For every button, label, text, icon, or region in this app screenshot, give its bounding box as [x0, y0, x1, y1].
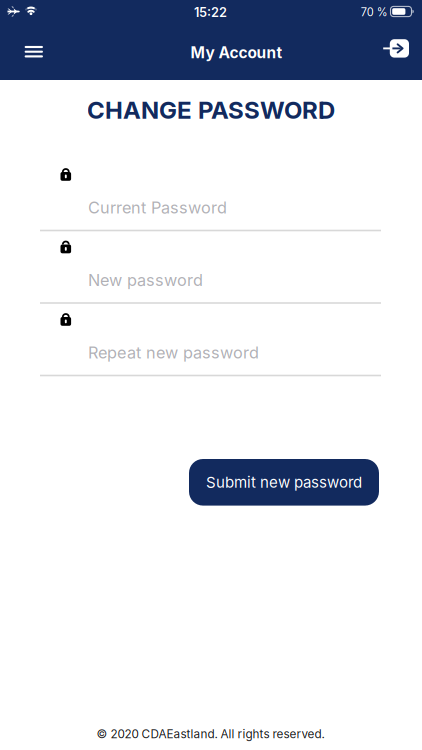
button[interactable]: Log out	[374, 28, 418, 68]
staticText: 70 %	[361, 6, 388, 19]
button[interactable]: Menu	[12, 32, 56, 72]
staticText: Current Password	[88, 198, 227, 217]
staticText: My Account	[190, 43, 282, 62]
staticText: New password	[88, 270, 203, 290]
staticText: Repeat new password	[88, 343, 259, 362]
staticText: © 2020 CDAEastland. All rights reserved.	[96, 727, 324, 741]
staticText: CHANGE PASSWORD	[87, 95, 335, 124]
staticText: 15:22	[194, 5, 227, 20]
button[interactable]: Submit new password	[189, 459, 379, 506]
staticText: Submit new password	[206, 473, 362, 491]
